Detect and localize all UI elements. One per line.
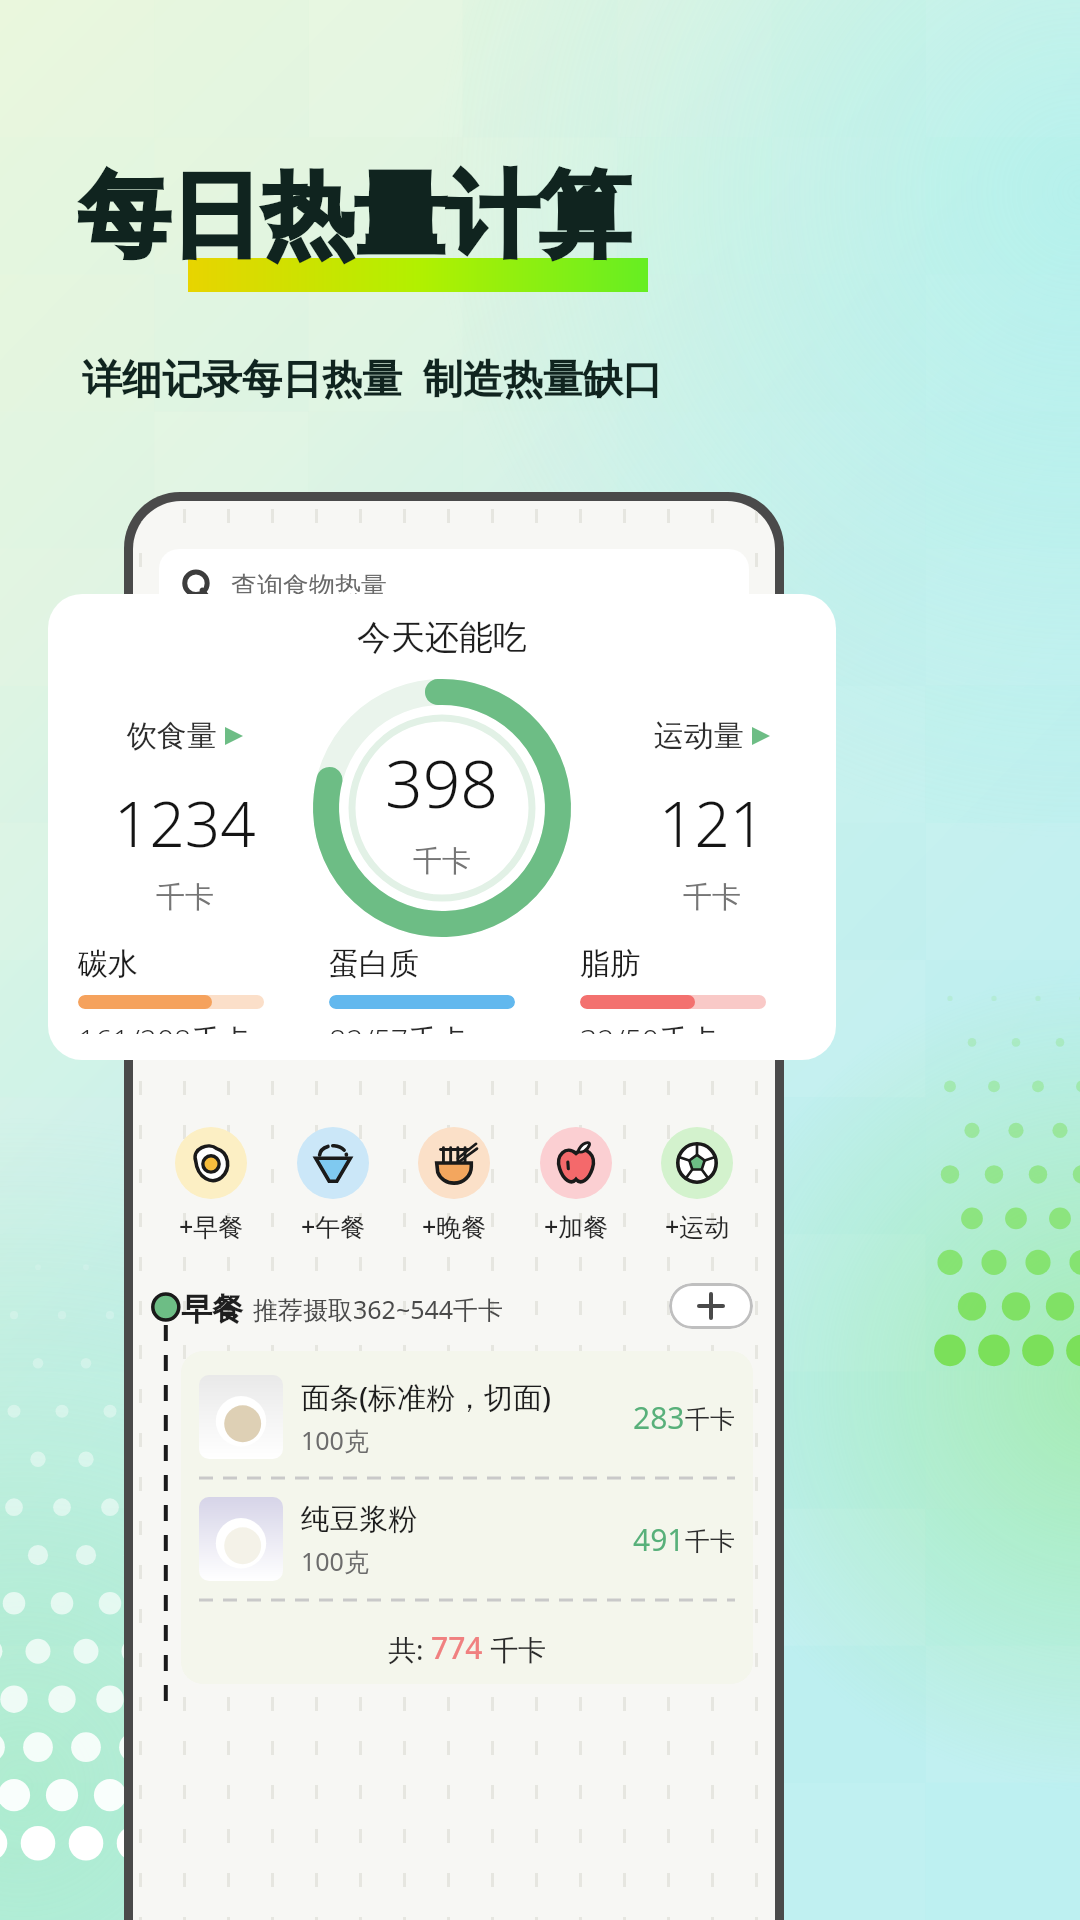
staticText: +运动 [665, 1209, 730, 1243]
button[interactable]: +午餐 [277, 1123, 389, 1247]
staticText: 100克 [301, 1423, 369, 1457]
button[interactable]: 查询食物热量 [159, 549, 749, 623]
staticText: 蛋白质 [329, 945, 419, 983]
button[interactable]: 脂肪 [576, 941, 810, 1038]
staticText: 千卡 [413, 843, 471, 880]
button[interactable]: 398 [311, 677, 573, 939]
button[interactable]: Add breakfast item [669, 1283, 753, 1329]
staticText: 32/50千卡 [580, 1019, 719, 1034]
button[interactable]: +早餐 [155, 1123, 267, 1247]
staticText: 283 [633, 1397, 685, 1438]
staticText: +加餐 [544, 1209, 609, 1243]
staticText: 100克 [301, 1544, 369, 1578]
staticText: 161/208千卡 [78, 1019, 252, 1034]
staticText: 千卡 [483, 1630, 547, 1668]
button[interactable]: 碳水 [74, 941, 308, 1038]
staticText: 千卡 [685, 1526, 735, 1557]
staticText: 398 [385, 737, 499, 827]
staticText: 774 [431, 1627, 483, 1668]
button[interactable]: 面条(标准粉，切面) [199, 1367, 735, 1467]
staticText: 碳水 [78, 945, 138, 983]
staticText: +晚餐 [422, 1209, 487, 1243]
staticText: 121 [659, 781, 766, 865]
staticText: 每日热量计算 [78, 158, 630, 274]
staticText: 饮食量 [127, 717, 217, 755]
staticText: 运动量 [654, 717, 744, 755]
button[interactable]: 运动量 [648, 711, 776, 922]
staticText: 面条(标准粉，切面) [301, 1377, 552, 1417]
button[interactable]: +运动 [641, 1123, 753, 1247]
staticText: 千卡 [685, 1404, 735, 1435]
button[interactable]: +晚餐 [398, 1123, 510, 1247]
staticText: 推荐摄取362~544千卡 [253, 1292, 504, 1326]
staticText: 共: [388, 1630, 431, 1668]
staticText: 查询食物热量 [231, 570, 387, 603]
staticText: +午餐 [301, 1209, 366, 1243]
staticText: 早餐 [181, 1290, 243, 1329]
staticText: 脂肪 [580, 945, 640, 983]
staticText: 今天还能吃 [48, 616, 836, 659]
staticText: 纯豆浆粉 [301, 1501, 417, 1538]
staticText: 1234 [114, 781, 256, 865]
staticText: 千卡 [156, 879, 214, 916]
button[interactable]: 饮食量 [108, 711, 262, 922]
staticText: 详细记录每日热量 制造热量缺口 [82, 350, 663, 405]
button[interactable]: 蛋白质 [325, 941, 559, 1038]
button[interactable]: 纯豆浆粉 [199, 1489, 735, 1589]
staticText: +早餐 [179, 1209, 244, 1243]
staticText: 491 [633, 1519, 685, 1560]
staticText: 千卡 [683, 879, 741, 916]
staticText: 82/57千卡 [329, 1019, 468, 1034]
button[interactable]: +加餐 [520, 1123, 632, 1247]
